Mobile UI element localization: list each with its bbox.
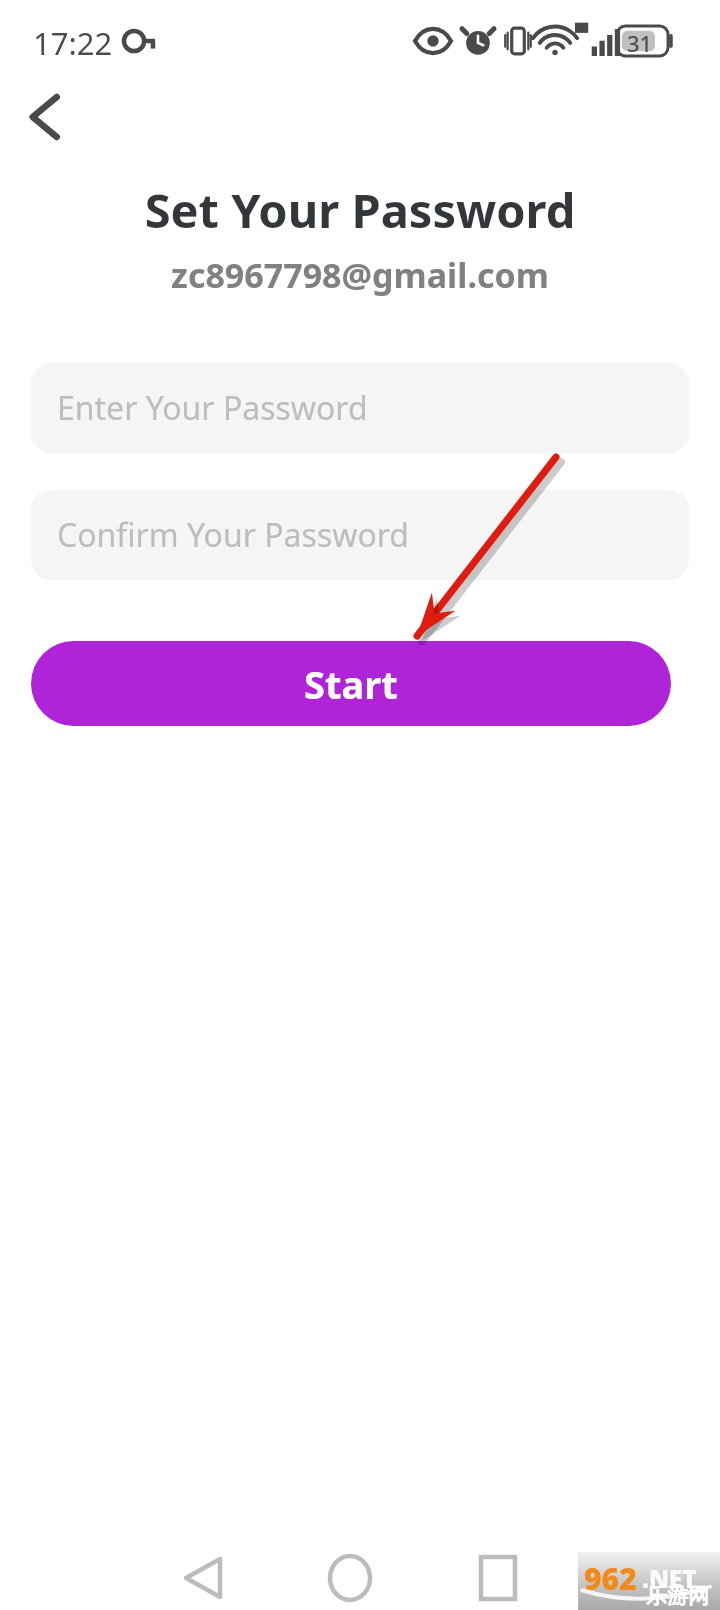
staticText: Set Your Password — [0, 178, 720, 242]
staticText: 962 — [584, 1558, 637, 1599]
staticText: 17:22 — [33, 22, 113, 64]
staticText: Confirm Your Password — [57, 513, 410, 557]
button[interactable]: Back — [163, 1538, 243, 1610]
staticText: 31 — [627, 28, 653, 58]
staticText: Start — [304, 658, 398, 710]
staticText: .NET — [642, 1562, 697, 1595]
button[interactable]: Recent apps — [458, 1538, 538, 1610]
button[interactable]: Confirm Your Password — [31, 490, 689, 580]
staticText: 乐游网 — [646, 1583, 709, 1609]
button[interactable]: Enter Your Password — [31, 363, 689, 453]
button[interactable]: Start — [31, 641, 671, 726]
staticText: Enter Your Password — [57, 386, 368, 430]
button[interactable]: Home — [310, 1538, 390, 1610]
button[interactable]: Back — [12, 86, 78, 148]
staticText: zc8967798@gmail.com — [0, 252, 720, 298]
